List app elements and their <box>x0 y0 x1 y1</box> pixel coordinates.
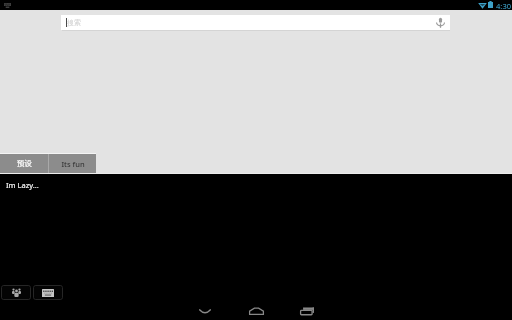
button[interactable]: Its fun <box>49 154 96 173</box>
staticText: 预设 <box>17 159 32 168</box>
button[interactable]: Home <box>244 301 268 320</box>
button[interactable]: Voice search <box>433 15 448 30</box>
staticText: Im Lazy... <box>6 180 39 190</box>
staticText: 搜索 <box>67 18 81 27</box>
button[interactable]: Back <box>193 302 217 320</box>
button[interactable]: 搜索 <box>61 15 450 30</box>
button[interactable]: Keyboard <box>33 285 63 300</box>
staticText: 4:30 <box>496 1 512 11</box>
staticText: Its fun <box>61 159 85 169</box>
button[interactable]: 预设 <box>0 154 48 173</box>
button[interactable]: Recents <box>295 301 319 320</box>
button[interactable]: People <box>1 285 31 300</box>
